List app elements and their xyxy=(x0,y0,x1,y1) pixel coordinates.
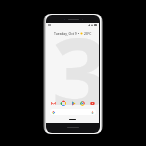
staticText: 20°C xyxy=(84,31,92,35)
button[interactable]: Play Store xyxy=(70,100,76,106)
button[interactable]: YouTube xyxy=(89,100,95,106)
button[interactable] xyxy=(50,109,96,115)
button[interactable]: Photos xyxy=(60,100,66,106)
staticText: Tuesday, Oct 9 xyxy=(54,31,77,35)
button[interactable]: Chrome xyxy=(79,100,85,106)
staticText: 3 xyxy=(52,23,99,105)
button[interactable]: Gmail xyxy=(50,100,56,106)
